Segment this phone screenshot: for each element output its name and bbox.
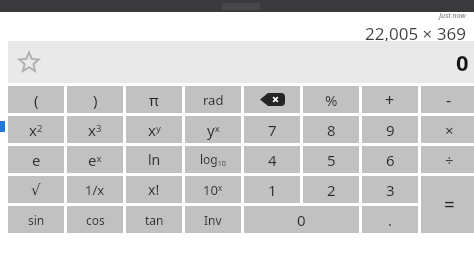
staticText: x3 xyxy=(88,120,102,140)
button[interactable]: - xyxy=(421,86,474,113)
staticText: Just now xyxy=(439,11,466,21)
button[interactable]: Add to favorites xyxy=(16,49,42,75)
staticText: ) xyxy=(93,90,98,110)
staticText: % xyxy=(325,90,338,110)
staticText: log10 xyxy=(200,151,226,168)
button[interactable]: Backspace xyxy=(244,86,300,113)
staticText: √ xyxy=(31,181,41,198)
button[interactable]: xy xyxy=(126,116,182,143)
staticText: ln xyxy=(148,150,161,169)
button[interactable]: ( xyxy=(8,86,64,113)
button[interactable]: 2 xyxy=(303,176,359,203)
staticText: 2 xyxy=(327,180,336,200)
button[interactable]: √ xyxy=(8,176,64,203)
button[interactable]: 3 xyxy=(362,176,418,203)
button[interactable]: Add to favorites xyxy=(8,41,474,83)
button[interactable]: log10 xyxy=(185,146,241,173)
staticText: cos xyxy=(86,212,105,228)
staticText: 7 xyxy=(268,120,277,140)
button[interactable]: ln xyxy=(126,146,182,173)
staticText: sin xyxy=(28,212,45,228)
staticText: - xyxy=(446,89,452,111)
button[interactable]: 8 xyxy=(303,116,359,143)
button[interactable]: ÷ xyxy=(421,146,474,173)
staticText: 3 xyxy=(386,180,395,200)
button[interactable]: 6 xyxy=(362,146,418,173)
staticText: 10x xyxy=(203,181,223,199)
button[interactable]: x3 xyxy=(67,116,123,143)
button[interactable]: ) xyxy=(67,86,123,113)
staticText: 8 xyxy=(327,120,336,140)
staticText: 1/x xyxy=(85,181,105,199)
staticText: rad xyxy=(203,91,224,109)
button[interactable]: rad xyxy=(185,86,241,113)
button[interactable]: × xyxy=(421,116,474,143)
button[interactable]: . xyxy=(362,206,418,233)
staticText: yx xyxy=(207,120,220,140)
button[interactable]: 7 xyxy=(244,116,300,143)
staticText: = xyxy=(444,192,455,218)
staticText: 4 xyxy=(268,150,277,170)
button[interactable]: 1/x xyxy=(67,176,123,203)
button[interactable]: 1 xyxy=(244,176,300,203)
staticText: x2 xyxy=(29,120,43,140)
staticText: . xyxy=(388,210,393,230)
button[interactable]: sin xyxy=(8,206,64,233)
staticText: x! xyxy=(148,180,160,199)
button[interactable]: 10x xyxy=(185,176,241,203)
button[interactable]: tan xyxy=(126,206,182,233)
staticText: π xyxy=(149,90,159,110)
button[interactable]: = xyxy=(421,176,474,233)
button[interactable]: π xyxy=(126,86,182,113)
button[interactable]: cos xyxy=(67,206,123,233)
staticText: Inv xyxy=(204,212,222,228)
staticText: xy xyxy=(148,120,161,140)
button[interactable]: 9 xyxy=(362,116,418,143)
button[interactable]: 5 xyxy=(303,146,359,173)
staticText: 22,005 × 369 xyxy=(365,22,466,45)
staticText: 0 xyxy=(456,47,469,77)
staticText: 1 xyxy=(268,180,277,200)
staticText: 9 xyxy=(386,120,395,140)
staticText: + xyxy=(385,89,395,111)
button[interactable]: + xyxy=(362,86,418,113)
button[interactable]: Inv xyxy=(185,206,241,233)
button[interactable]: 0 xyxy=(244,206,359,233)
button[interactable]: e xyxy=(8,146,64,173)
button[interactable]: % xyxy=(303,86,359,113)
staticText: e xyxy=(32,150,41,170)
button[interactable]: x! xyxy=(126,176,182,203)
staticText: ÷ xyxy=(445,150,454,170)
staticText: ex xyxy=(88,150,102,170)
staticText: tan xyxy=(145,212,164,228)
button[interactable]: 4 xyxy=(244,146,300,173)
button[interactable]: yx xyxy=(185,116,241,143)
staticText: 6 xyxy=(386,150,395,170)
staticText: 0 xyxy=(297,210,306,230)
staticText: ( xyxy=(34,90,39,110)
button[interactable]: x2 xyxy=(8,116,64,143)
button[interactable]: ex xyxy=(67,146,123,173)
staticText: 5 xyxy=(327,150,336,170)
staticText: × xyxy=(445,120,454,140)
